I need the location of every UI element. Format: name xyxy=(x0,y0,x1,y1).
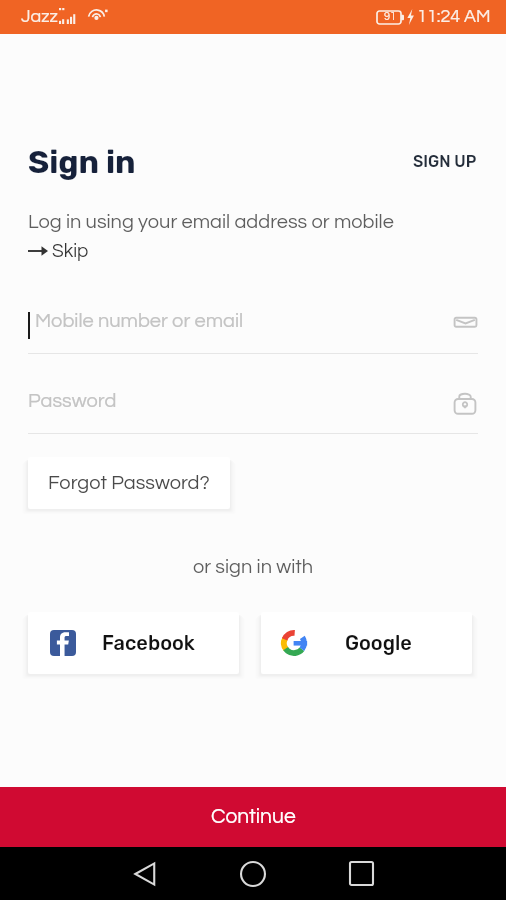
button[interactable]: Sign in xyxy=(28,143,136,181)
staticText: Sign in xyxy=(28,143,136,181)
staticText: 91 xyxy=(384,11,397,22)
button[interactable]: Recent apps xyxy=(333,847,389,900)
staticText: Password xyxy=(28,391,117,412)
staticText: Jazz xyxy=(21,7,58,26)
staticText: SIGN UP xyxy=(413,152,477,171)
staticText: Continue xyxy=(211,806,296,828)
staticText: or sign in with xyxy=(0,557,506,578)
button[interactable]: Show password xyxy=(452,390,478,416)
button[interactable]: Skip xyxy=(28,241,89,261)
button[interactable]: Sign in with Facebook xyxy=(28,612,239,674)
button[interactable]: Email xyxy=(452,310,478,336)
staticText: Log in using your email address or mobil… xyxy=(28,212,394,233)
staticText: Forgot Password? xyxy=(48,473,210,494)
button[interactable]: Continue xyxy=(0,787,506,847)
button[interactable]: SIGN UP xyxy=(413,152,477,171)
staticText: Facebook xyxy=(102,631,195,655)
staticText: Skip xyxy=(52,241,89,261)
button[interactable]: Back xyxy=(117,847,173,900)
button[interactable]: Forgot Password? xyxy=(28,457,230,509)
button[interactable]: Sign in with Google xyxy=(261,612,472,674)
staticText: Google xyxy=(345,631,412,655)
staticText: Mobile number or email xyxy=(35,311,244,332)
button[interactable]: Home xyxy=(225,847,281,900)
staticText: 11:24 AM xyxy=(417,7,491,26)
